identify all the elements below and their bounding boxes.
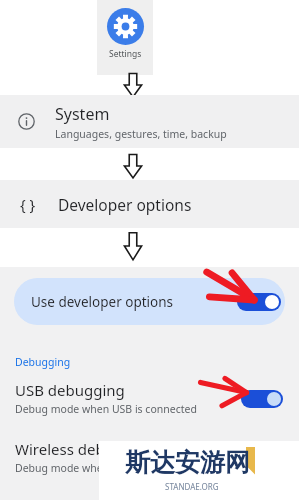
staticText: Languages, gestures, time, backup [55,127,227,141]
button[interactable]: System [0,95,299,148]
staticText: Developer options [58,194,192,215]
staticText: USB debugging [15,380,125,400]
button[interactable]: { } [0,180,299,228]
staticText: STANDAE.ORG [165,481,219,492]
button[interactable]: Wireless debugging [15,439,225,475]
staticText: Debugging [15,355,71,369]
staticText: { } [20,194,36,214]
staticText: Wireless debugging [15,439,155,459]
staticText: Debug mode when USB is connected [15,402,197,416]
button[interactable]: USB debugging toggle [241,390,283,408]
staticText: Settings [109,48,142,60]
staticText: Use developer options [31,293,174,311]
button[interactable]: USB debugging [15,380,225,416]
staticText: System [55,103,110,125]
button[interactable]: Settings [97,0,153,75]
button[interactable]: Use developer options toggle [237,293,281,311]
staticText: 网 [225,447,250,478]
button[interactable]: Use developer options [14,278,285,325]
staticText: 斯达安游 [125,447,225,478]
staticText: Debug mode when Wi-Fi is connected [15,461,201,475]
